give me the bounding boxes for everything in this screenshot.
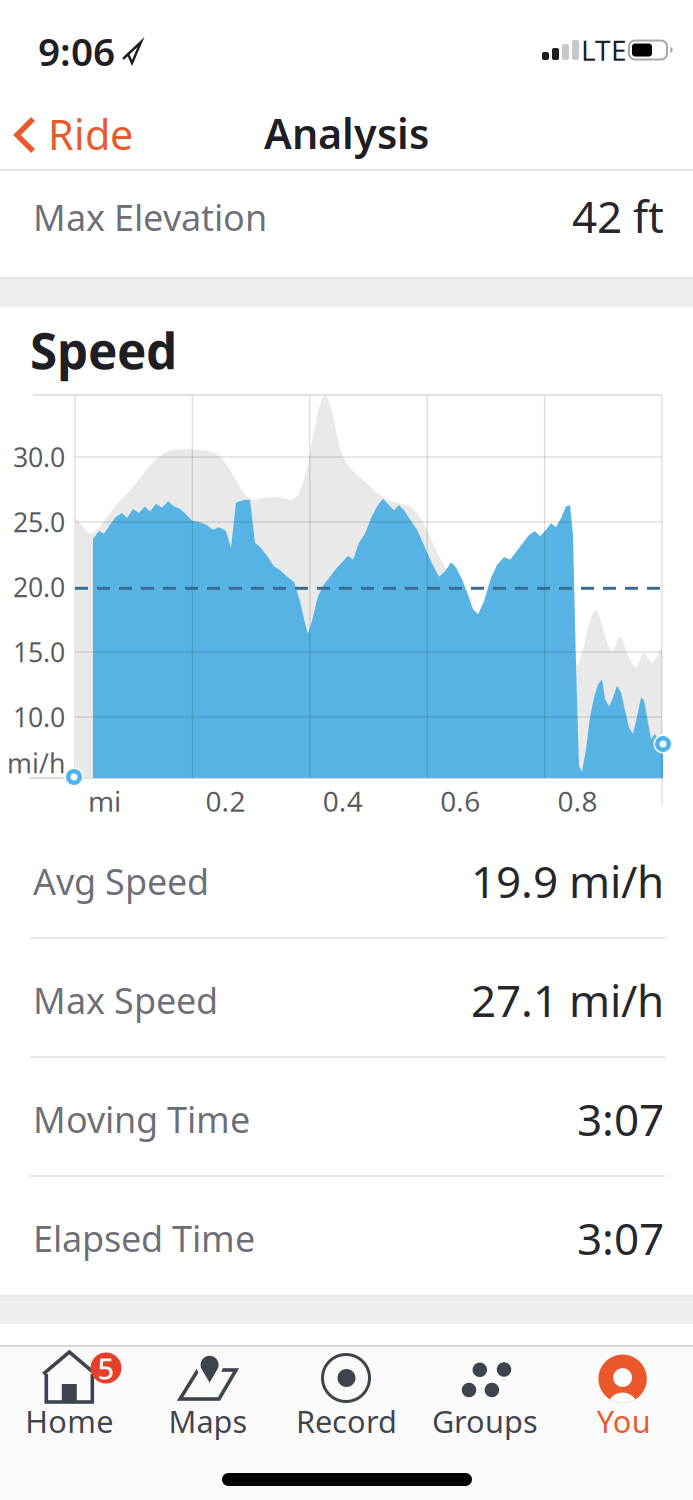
staticText: mi xyxy=(88,782,121,820)
staticText: 0.2 xyxy=(205,782,245,820)
staticText: Speed xyxy=(30,317,177,383)
staticText: Home xyxy=(25,1401,113,1441)
staticText: 9:06 xyxy=(38,25,115,77)
staticText: Ride xyxy=(48,107,133,161)
staticText: Groups xyxy=(432,1401,538,1441)
staticText: 0.6 xyxy=(440,782,480,820)
staticText: 19.9 mi/h xyxy=(471,852,664,910)
staticText: 0.4 xyxy=(323,782,363,820)
button[interactable]: Back xyxy=(0,99,150,169)
staticText: Max Speed xyxy=(33,976,218,1024)
staticText: Elapsed Time xyxy=(33,1214,255,1262)
staticText: Maps xyxy=(168,1401,247,1441)
staticText: Moving Time xyxy=(33,1095,250,1143)
staticText: 30.0 xyxy=(13,439,65,475)
staticText: 42 ft xyxy=(572,187,664,245)
staticText: 3:07 xyxy=(577,1090,664,1148)
staticText: 27.1 mi/h xyxy=(471,971,664,1029)
staticText: 25.0 xyxy=(13,504,65,540)
staticText: 5 xyxy=(97,1348,114,1387)
staticText: Avg Speed xyxy=(33,857,209,905)
staticText: Max Elevation xyxy=(33,193,267,241)
button[interactable]: Record xyxy=(277,1348,415,1468)
staticText: 0.8 xyxy=(558,782,598,820)
staticText: 20.0 xyxy=(13,569,65,605)
button[interactable]: Maps xyxy=(139,1348,277,1468)
staticText: LTE xyxy=(581,31,627,69)
staticText: mi/h xyxy=(7,745,65,781)
button[interactable]: Groups xyxy=(416,1348,554,1468)
staticText: Record xyxy=(296,1401,397,1441)
staticText: 15.0 xyxy=(13,634,65,670)
staticText: Analysis xyxy=(264,106,429,160)
staticText: 10.0 xyxy=(13,699,65,735)
staticText: 3:07 xyxy=(577,1209,664,1267)
staticText: You xyxy=(597,1401,651,1441)
button[interactable]: You xyxy=(555,1348,693,1468)
button[interactable]: Home xyxy=(0,1348,138,1468)
